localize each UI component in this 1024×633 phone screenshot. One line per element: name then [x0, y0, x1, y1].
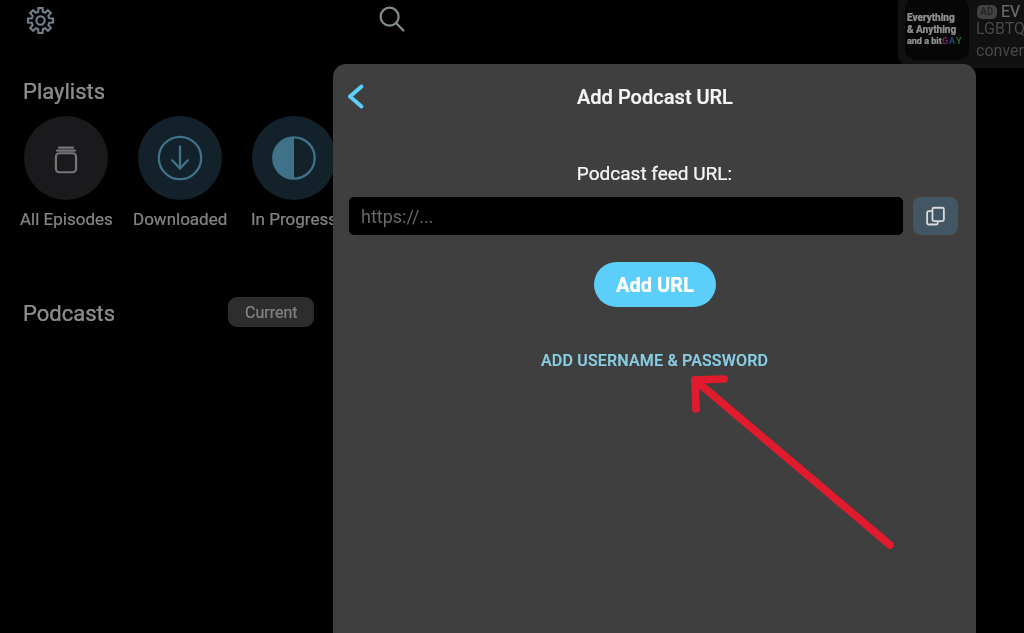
staticText: AD [980, 6, 994, 18]
staticText: All Episodes [20, 209, 113, 229]
staticText: Add URL [616, 273, 694, 296]
staticText: EV [1001, 2, 1021, 21]
staticText: LGBTQ [976, 19, 1024, 38]
staticText: Current [245, 303, 298, 322]
staticText: Downloaded [133, 209, 228, 229]
staticText: A [949, 36, 956, 47]
staticText: and a bit [907, 36, 942, 47]
staticText: Podcast feed URL: [333, 162, 976, 184]
staticText: Y [956, 36, 962, 47]
staticText: https://... [361, 206, 434, 227]
button[interactable]: Add URL [594, 262, 716, 307]
button[interactable]: https://... [349, 197, 903, 235]
staticText: G [942, 36, 949, 47]
staticText: convers [976, 41, 1024, 60]
button[interactable]: Back [333, 68, 385, 124]
button[interactable]: Search [372, 0, 412, 40]
staticText: Add Podcast URL [577, 85, 733, 108]
button[interactable] [252, 116, 336, 200]
staticText: In Progress [251, 209, 337, 229]
staticText: Playlists [23, 79, 106, 105]
button[interactable]: Paste from clipboard [913, 197, 958, 235]
button[interactable]: ADD USERNAME & PASSWORD [527, 344, 783, 377]
button[interactable] [138, 116, 222, 200]
button[interactable] [898, 0, 1024, 68]
staticText: Podcasts [23, 301, 116, 327]
staticText: ADD USERNAME & PASSWORD [541, 351, 769, 370]
staticText: Everything [907, 12, 955, 24]
button[interactable] [24, 116, 108, 200]
button[interactable]: Settings [20, 0, 60, 40]
button[interactable]: Current [228, 297, 314, 327]
staticText: & Anything [907, 24, 957, 36]
